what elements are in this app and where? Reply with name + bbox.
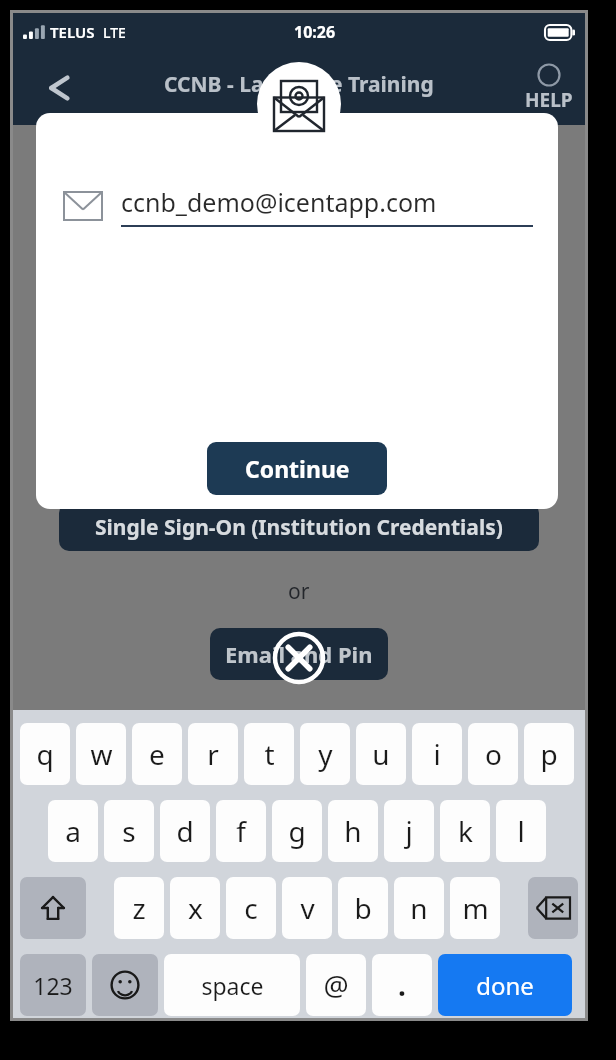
button[interactable]: x	[170, 877, 220, 939]
button[interactable]: n	[394, 877, 444, 939]
staticText: .	[398, 966, 406, 1004]
staticText: or	[288, 577, 310, 606]
button[interactable]: u	[356, 723, 406, 785]
staticText: v	[300, 889, 315, 927]
button[interactable]: v	[282, 877, 332, 939]
button[interactable]: ccnb_demo@icentapp.com	[121, 185, 533, 227]
staticText: c	[244, 889, 258, 927]
button[interactable]: h	[328, 800, 378, 862]
staticText: TELUS	[50, 22, 95, 42]
button[interactable]: b	[338, 877, 388, 939]
button[interactable]: Continue	[207, 442, 387, 495]
staticText: s	[122, 812, 136, 850]
staticText: j	[405, 812, 413, 850]
button[interactable]: @	[306, 954, 366, 1016]
staticText: HELP	[525, 87, 573, 113]
staticText: Continue	[245, 453, 350, 484]
button[interactable]: t	[244, 723, 294, 785]
staticText: l	[517, 812, 525, 850]
button[interactable]: q	[20, 723, 70, 785]
button[interactable]: space	[164, 954, 300, 1016]
staticText: e	[149, 735, 165, 773]
staticText: @	[323, 966, 349, 1004]
staticText: b	[354, 889, 372, 927]
staticText: 123	[33, 970, 73, 1001]
button[interactable]: o	[468, 723, 518, 785]
button[interactable]: y	[300, 723, 350, 785]
staticText: u	[372, 735, 390, 773]
button[interactable]: Backspace	[528, 877, 578, 939]
staticText: Single Sign-On (Institution Credentials)	[95, 513, 503, 542]
button[interactable]: Back	[35, 68, 75, 108]
staticText: 10:26	[294, 21, 336, 43]
button[interactable]: g	[272, 800, 322, 862]
staticText: q	[36, 735, 54, 773]
button[interactable]: w	[76, 723, 126, 785]
staticText: t	[264, 735, 275, 773]
staticText: LTE	[103, 23, 126, 42]
button[interactable]: d	[160, 800, 210, 862]
staticText: m	[462, 889, 489, 927]
staticText: ccnb_demo@icentapp.com	[121, 185, 437, 219]
button[interactable]: 123	[20, 954, 86, 1016]
button[interactable]: m	[450, 877, 500, 939]
staticText: a	[65, 812, 81, 850]
button[interactable]: HELP	[521, 59, 577, 117]
button[interactable]: r	[188, 723, 238, 785]
staticText: x	[188, 889, 203, 927]
button[interactable]: c	[226, 877, 276, 939]
button[interactable]: l	[496, 800, 546, 862]
staticText: w	[90, 735, 113, 773]
staticText: space	[201, 970, 264, 1001]
button[interactable]: z	[114, 877, 164, 939]
button[interactable]: a	[48, 800, 98, 862]
button[interactable]: Emoji	[92, 954, 158, 1016]
button[interactable]: k	[440, 800, 490, 862]
staticText: f	[236, 812, 246, 850]
button[interactable]: j	[384, 800, 434, 862]
button[interactable]: Email and Pin	[210, 628, 388, 680]
button[interactable]: Single Sign-On (Institution Credentials)	[59, 503, 539, 551]
staticText: o	[485, 735, 502, 773]
button[interactable]: f	[216, 800, 266, 862]
staticText: y	[318, 735, 333, 773]
button[interactable]: done	[438, 954, 572, 1016]
button[interactable]: Close	[272, 631, 326, 685]
staticText: r	[207, 735, 219, 773]
staticText: k	[458, 812, 473, 850]
button[interactable]: s	[104, 800, 154, 862]
staticText: done	[476, 969, 534, 1002]
staticText: CCNB - Language Training	[164, 70, 434, 99]
staticText: z	[132, 889, 146, 927]
staticText: p	[540, 735, 558, 773]
button[interactable]: p	[524, 723, 574, 785]
staticText: i	[433, 735, 441, 773]
staticText: Email and Pin	[225, 639, 373, 669]
staticText: g	[288, 812, 306, 850]
staticText: h	[344, 812, 362, 850]
button[interactable]: .	[372, 954, 432, 1016]
button[interactable]: i	[412, 723, 462, 785]
staticText: d	[176, 812, 194, 850]
button[interactable]: e	[132, 723, 182, 785]
button[interactable]: Shift	[20, 877, 86, 939]
staticText: n	[410, 889, 428, 927]
